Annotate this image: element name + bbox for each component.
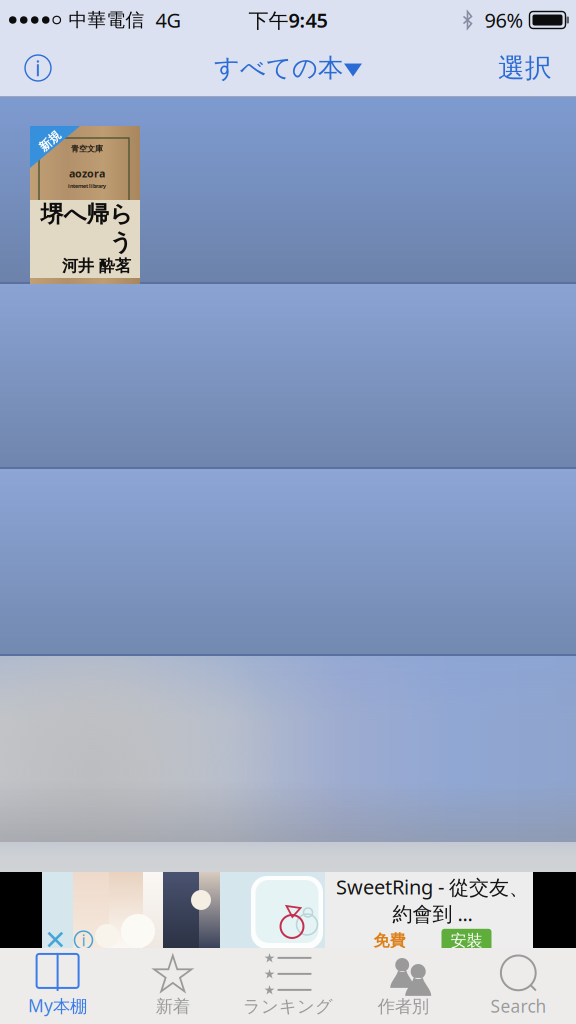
staticText: ✕ — [44, 925, 66, 955]
staticText: internet library — [68, 182, 106, 190]
staticText: i — [81, 929, 85, 951]
button[interactable]: 作者別 — [346, 948, 461, 1024]
staticText: 免費 — [373, 931, 405, 950]
staticText: 新着 — [156, 996, 190, 1017]
button[interactable]: Search — [461, 948, 576, 1024]
staticText: 4G — [155, 7, 181, 33]
button[interactable]: ランキング — [230, 948, 346, 1024]
staticText: 作者別 — [378, 996, 429, 1017]
staticText: 安裝 — [450, 931, 482, 950]
staticText: ランキング — [243, 996, 333, 1017]
button[interactable]: すべての本 — [214, 42, 362, 94]
button[interactable]: 新着 — [115, 948, 230, 1024]
button[interactable]: 選択 — [470, 42, 552, 94]
staticText: aozora — [69, 166, 105, 180]
button[interactable]: Info — [12, 42, 64, 94]
staticText: SweetRing - 從交友、 — [336, 874, 529, 900]
staticText: 約會到 ... — [392, 900, 472, 927]
staticText: 堺へ帰らう — [40, 200, 132, 256]
button[interactable]: ✕ — [42, 872, 533, 948]
staticText: Search — [490, 994, 546, 1017]
staticText: 中華電信 — [68, 8, 144, 31]
staticText: すべての本 — [214, 52, 343, 83]
staticText: My本棚 — [28, 994, 87, 1017]
staticText: 青空文庫 — [71, 144, 103, 154]
staticText: 下午9:45 — [248, 7, 327, 33]
staticText: 新規 — [38, 134, 62, 148]
staticText: 河井 酔茗 — [62, 256, 131, 276]
staticText: i — [35, 54, 41, 82]
button[interactable]: My本棚 — [0, 948, 115, 1024]
staticText: 選択 — [498, 52, 552, 84]
staticText: 96% — [484, 7, 523, 33]
